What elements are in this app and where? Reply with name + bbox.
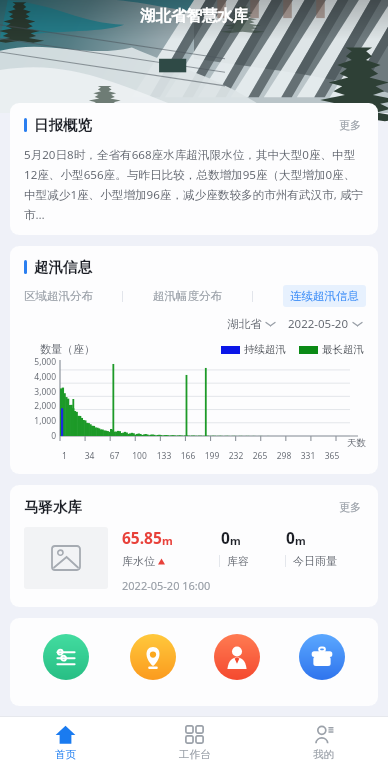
staticText: 5,000 [24,356,56,368]
button[interactable]: 更多 [336,497,364,517]
staticText: 湖北省 [227,317,262,331]
staticText: 365 [320,450,344,462]
button[interactable]: 区域超汛分布 [24,286,93,306]
staticText: 65.85 [122,527,162,548]
staticText: 我的 [313,748,334,761]
staticText: 库水位 [122,554,155,568]
staticText: 0 [286,527,295,548]
staticText: 湖北省智慧水库 [140,6,249,26]
staticText: 34 [77,450,102,462]
staticText: 3,000 [24,386,56,398]
button[interactable]: 数据管理 [35,632,97,691]
button[interactable]: 站点管理 [122,632,184,691]
staticText: 199 [200,450,224,462]
staticText: m [295,533,306,548]
staticText: 0 [221,527,230,548]
button[interactable]: 责任人 [208,632,266,691]
button[interactable]: 更多 [336,115,364,135]
staticText: 日报概览 [34,116,92,134]
button[interactable]: 连续超汛信息 [283,285,366,307]
button[interactable]: 马驿水库 [10,485,378,607]
button[interactable]: 工作台 [130,716,259,772]
staticText: 331 [296,450,320,462]
staticText: 2,000 [24,400,56,412]
staticText: 2022-05-20 [288,316,349,332]
staticText: 4,000 [24,371,56,383]
staticText: 更多 [339,500,361,514]
staticText: 232 [224,450,248,462]
staticText: 166 [176,450,200,462]
staticText: 67 [102,450,127,462]
staticText: m [230,533,241,548]
staticText: 1 [52,450,77,462]
staticText: 今日雨量 [293,554,337,568]
staticText: 库容 [227,554,249,568]
staticText: 133 [152,450,176,462]
staticText: 2022-05-20 16:00 [122,578,211,593]
staticText: 265 [248,450,272,462]
staticText: 天数 [347,437,366,449]
staticText: 工作台 [179,748,211,761]
staticText: 最长超汛 [322,343,364,356]
staticText: 1,000 [24,415,56,427]
staticText: 更多 [339,118,361,132]
staticText: 区域超汛分布 [24,289,93,303]
staticText: 超汛信息 [34,258,92,276]
staticText: 首页 [55,748,76,761]
staticText: 100 [127,450,152,462]
staticText: m [162,533,173,548]
staticText: 0 [24,430,56,442]
staticText: 5月20日8时，全省有668座水库超汛限水位，其中大型0座、中型12座、小型65… [24,147,364,222]
staticText: 持续超汛 [244,343,286,356]
staticText: 298 [272,450,296,462]
button[interactable]: 我的 [259,716,388,772]
button[interactable]: 超汛幅度分布 [153,286,222,306]
staticText: 连续超汛信息 [290,289,359,303]
staticText: 数量（座） [40,342,95,356]
staticText: 马驿水库 [24,498,82,516]
button[interactable]: 湖北省 [227,317,275,331]
button[interactable]: 业务管理 [291,632,353,691]
button[interactable]: 2022-05-20 [288,316,362,332]
button[interactable]: 首页 [0,716,130,772]
staticText: 超汛幅度分布 [153,289,222,303]
